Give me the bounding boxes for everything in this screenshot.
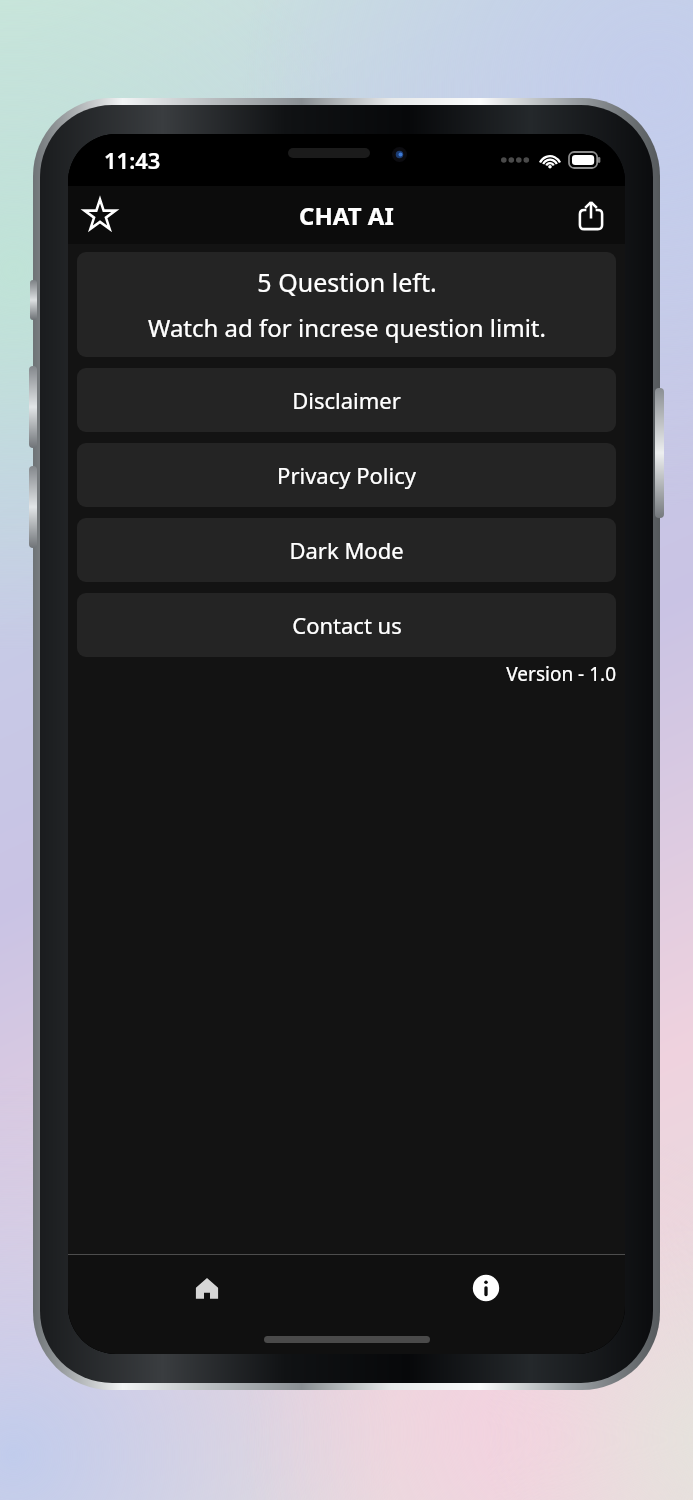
staticText: Watch ad for increse question limit. [148,311,546,344]
staticText: Privacy Policy [277,460,416,490]
button[interactable]: Dark Mode [77,518,616,582]
staticText: Dark Mode [289,535,404,565]
button[interactable]: Share [567,191,615,239]
button[interactable]: Disclaimer [77,368,616,432]
staticText: Disclaimer [292,385,401,415]
button[interactable]: Home [68,1255,346,1321]
staticText: 11:43 [104,145,161,175]
staticText: 5 Question left. [257,265,437,299]
button[interactable]: 5 Question left. [77,252,616,357]
staticText: Version - 1.0 [68,661,616,687]
staticText: Contact us [292,610,402,640]
button[interactable]: Privacy Policy [77,443,616,507]
staticText: CHAT AI [299,199,394,232]
button[interactable]: Info [346,1255,625,1321]
button[interactable]: Contact us [77,593,616,657]
button[interactable]: Rate app [76,191,124,239]
